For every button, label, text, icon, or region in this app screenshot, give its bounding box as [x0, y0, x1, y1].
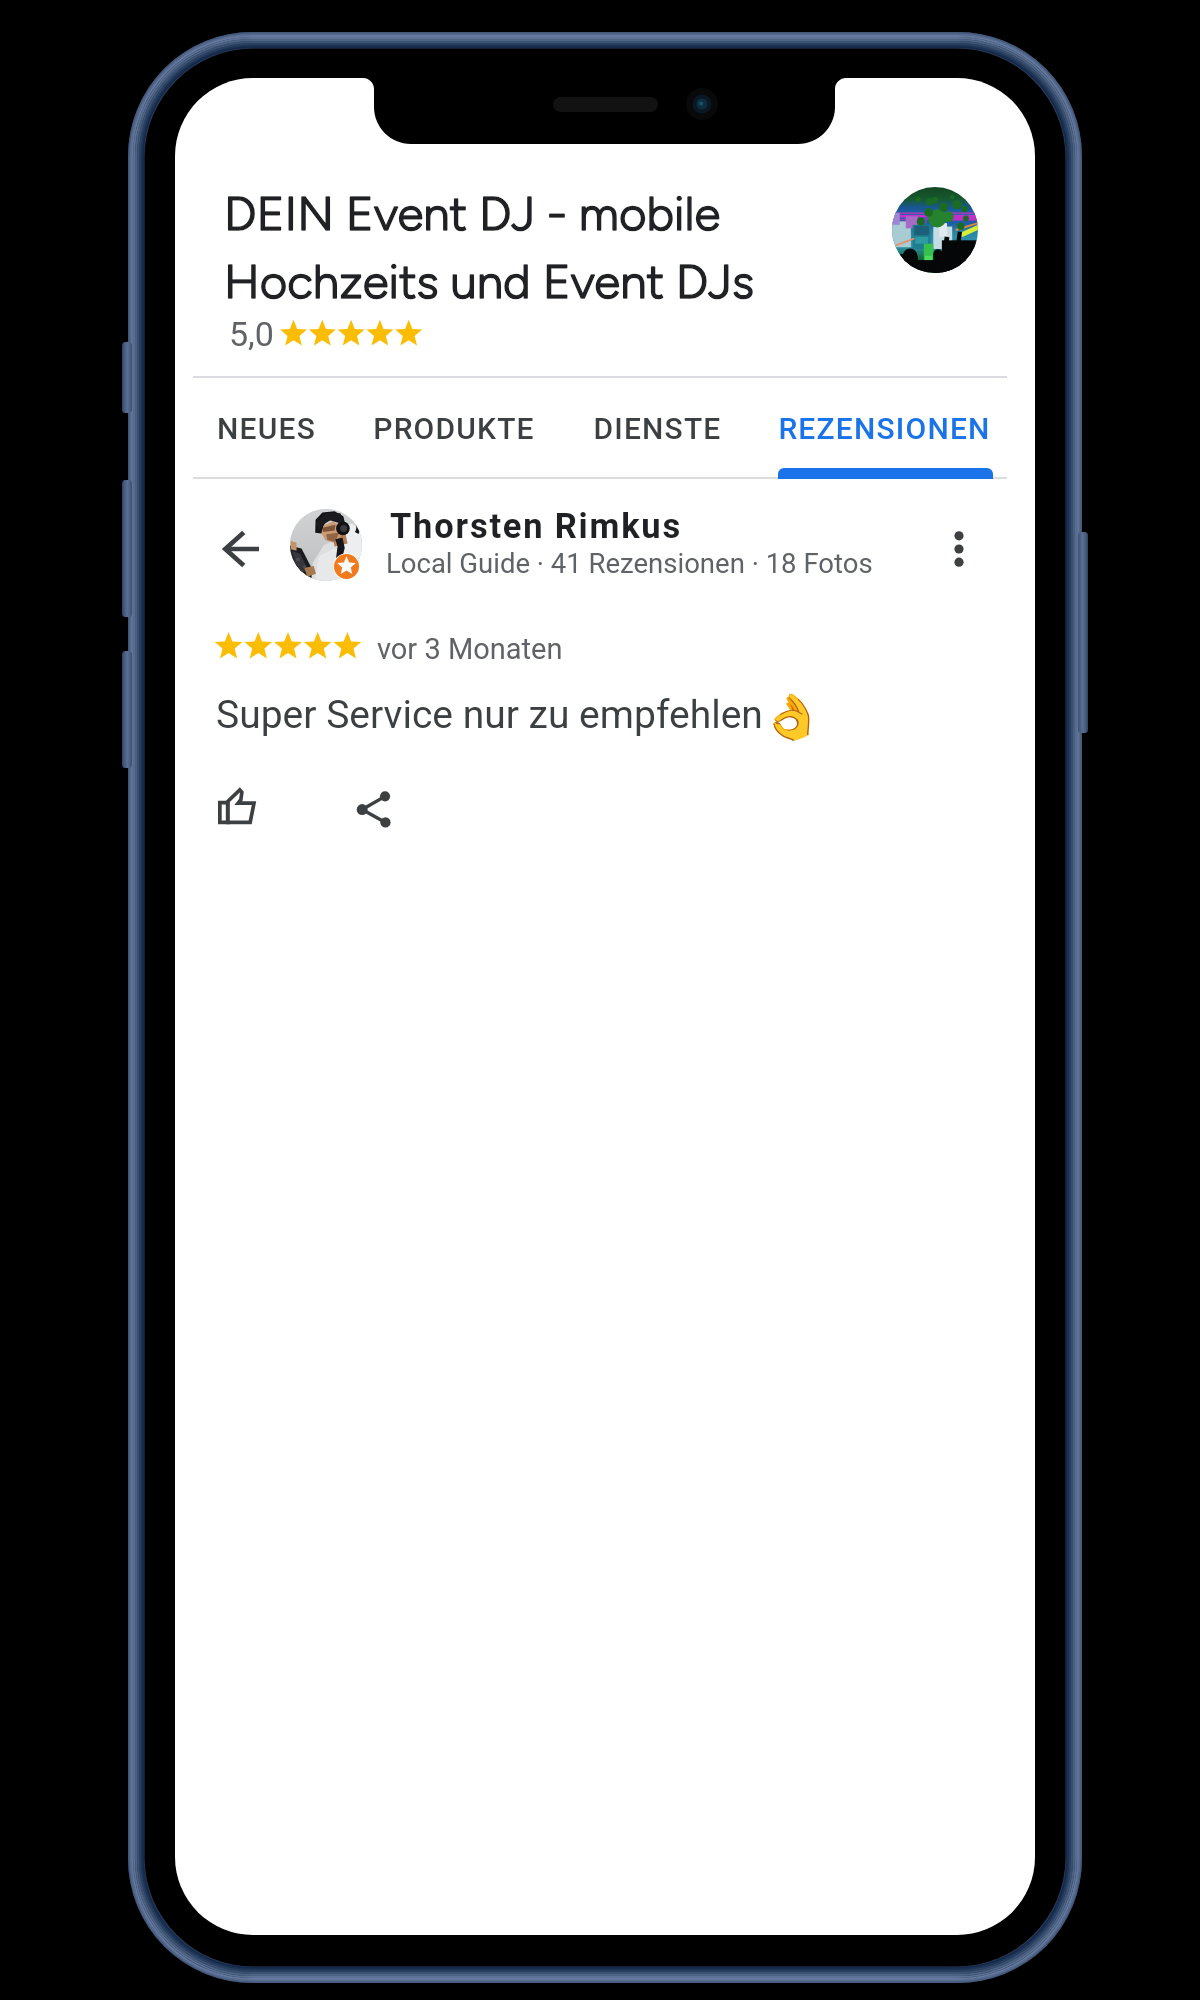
- button[interactable]: PRODUKTE: [364, 378, 544, 478]
- button[interactable]: Nützlich: [204, 773, 270, 839]
- staticText: Super Service nur zu empfehlen: [216, 692, 763, 738]
- button[interactable]: REZENSIONEN: [776, 378, 992, 478]
- button[interactable]: Profilbild: [892, 187, 978, 273]
- button[interactable]: NEUES: [206, 378, 326, 478]
- button[interactable]: Weitere Optionen: [926, 516, 992, 582]
- staticText: REZENSIONEN: [778, 411, 991, 446]
- staticText: Local Guide · 41 Rezensionen · 18 Fotos: [386, 547, 873, 579]
- button[interactable]: Teilen: [341, 777, 407, 843]
- staticText: vor 3 Monaten: [377, 632, 563, 666]
- button[interactable]: DIENSTE: [582, 378, 732, 478]
- staticText: 5,0: [229, 314, 274, 354]
- staticText: 👌: [757, 691, 827, 743]
- button[interactable]: Zurück: [208, 516, 274, 582]
- staticText: DEIN Event DJ - mobile Hochzeits und Eve…: [224, 185, 755, 310]
- staticText: DIENSTE: [593, 411, 722, 446]
- staticText: DEIN Event DJ - mobile Hochzeits und Eve…: [224, 185, 755, 310]
- staticText: NEUES: [217, 411, 316, 446]
- staticText: PRODUKTE: [373, 411, 535, 446]
- staticText: Thorsten Rimkus: [390, 506, 682, 546]
